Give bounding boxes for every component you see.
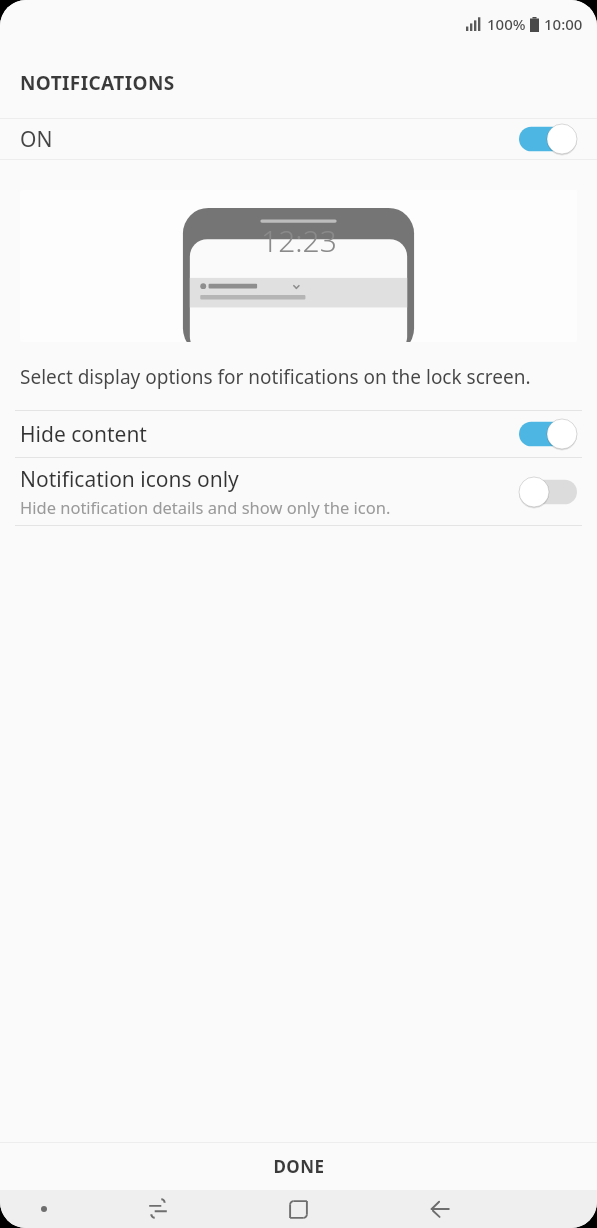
button[interactable]: Home [228, 1190, 369, 1228]
button[interactable]: Back [369, 1190, 510, 1228]
staticText: Hide notification details and show only … [20, 496, 391, 518]
staticText: Notification icons only [20, 465, 239, 494]
button[interactable]: DONE [0, 1143, 597, 1190]
staticText: 12:23 [261, 220, 337, 261]
staticText: 100% [487, 14, 526, 34]
staticText: Hide content [20, 420, 147, 449]
button[interactable]: Hide content [0, 411, 597, 457]
staticText: 10:00 [544, 14, 583, 34]
button[interactable]: ON [0, 119, 597, 159]
button[interactable]: Notification indicator [0, 1190, 87, 1228]
staticText: ON [20, 125, 53, 154]
staticText: NOTIFICATIONS [20, 70, 175, 96]
button[interactable]: Recents [87, 1190, 228, 1228]
staticText: DONE [273, 1155, 325, 1178]
button[interactable]: Notification icons only [0, 458, 597, 525]
staticText: Select display options for notifications… [20, 364, 577, 390]
